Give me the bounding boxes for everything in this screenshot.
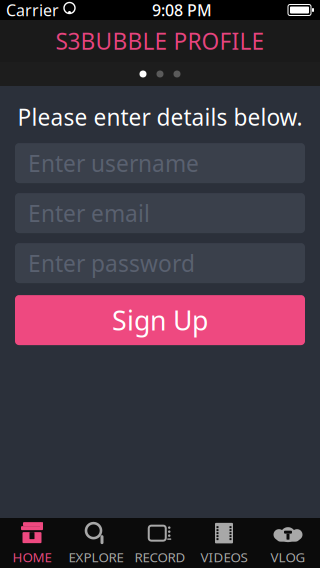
staticText: Enter password	[28, 248, 195, 278]
button[interactable]: HOME	[0, 518, 64, 568]
button[interactable]: Enter password	[15, 243, 305, 283]
button[interactable]: Sign Up	[15, 295, 305, 345]
staticText: Sign Up	[112, 302, 208, 338]
button[interactable]: EXPLORE	[64, 518, 128, 568]
staticText: 9:08 PM	[152, 0, 212, 21]
staticText: S3BUBBLE PROFILE	[55, 26, 264, 56]
button[interactable]: Enter email	[15, 193, 305, 233]
staticText: VLOG	[270, 548, 305, 566]
staticText: EXPLORE	[68, 548, 123, 566]
button[interactable]: VIDEOS	[192, 518, 256, 568]
button[interactable]: RECORD	[128, 518, 192, 568]
button[interactable]: VLOG	[256, 518, 320, 568]
staticText: Enter email	[28, 198, 150, 228]
staticText: Carrier	[6, 0, 59, 21]
staticText: Enter username	[28, 148, 199, 178]
staticText: RECORD	[134, 548, 185, 566]
button[interactable]: Enter username	[15, 143, 305, 183]
staticText: Please enter details below.	[17, 102, 302, 132]
staticText: VIDEOS	[200, 548, 247, 566]
staticText: HOME	[12, 548, 51, 566]
